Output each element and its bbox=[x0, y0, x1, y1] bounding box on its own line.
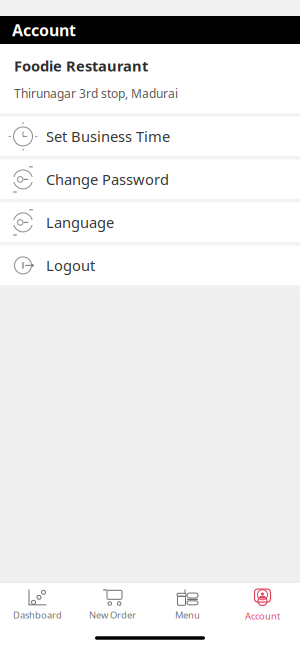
staticText: Logout bbox=[46, 256, 95, 275]
staticText: Account bbox=[12, 19, 76, 41]
staticText: Thirunagar 3rd stop, Madurai bbox=[14, 85, 178, 101]
staticText: New Order bbox=[89, 609, 136, 621]
button[interactable]: Dashboard bbox=[0, 585, 75, 625]
staticText: Language bbox=[46, 213, 114, 232]
staticText: Foodie Restaurant bbox=[14, 56, 148, 75]
button[interactable]: Account bbox=[225, 585, 300, 625]
button[interactable]: Menu bbox=[150, 585, 225, 625]
staticText: Set Business Time bbox=[46, 127, 170, 146]
staticText: Menu bbox=[175, 609, 200, 621]
button[interactable]: Language bbox=[0, 202, 300, 242]
staticText: Change Password bbox=[46, 170, 169, 189]
button[interactable]: Set Business Time bbox=[0, 116, 300, 156]
staticText: Dashboard bbox=[13, 609, 62, 621]
button[interactable]: New Order bbox=[75, 585, 150, 625]
button[interactable]: Logout bbox=[0, 245, 300, 285]
button[interactable]: Change Password bbox=[0, 159, 300, 199]
staticText: Account bbox=[245, 610, 280, 622]
